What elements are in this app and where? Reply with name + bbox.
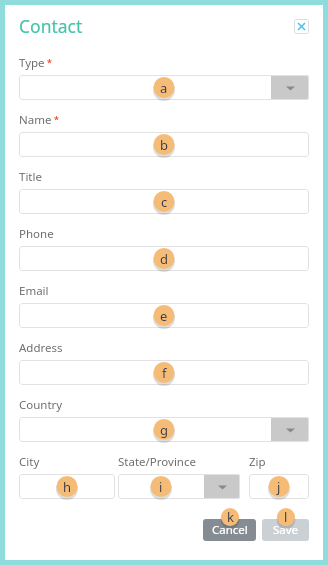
staticText: *	[54, 113, 59, 125]
button[interactable]	[19, 303, 309, 328]
button[interactable]	[19, 360, 309, 385]
button[interactable]: Close	[294, 19, 309, 34]
staticText: Email	[19, 283, 49, 299]
button[interactable]	[19, 132, 309, 157]
staticText: j	[277, 478, 281, 496]
staticText: k	[227, 508, 234, 526]
staticText: f	[162, 364, 167, 382]
staticText: State/Province	[118, 454, 196, 470]
staticText: City	[19, 454, 40, 470]
button[interactable]: Save	[262, 519, 309, 541]
staticText: i	[159, 478, 163, 496]
staticText: Title	[19, 169, 42, 185]
staticText: c	[161, 193, 168, 211]
staticText: g	[160, 421, 168, 439]
staticText: b	[160, 136, 168, 154]
button[interactable]: State or Province	[118, 474, 240, 499]
button[interactable]	[19, 474, 115, 499]
staticText: a	[160, 79, 168, 97]
staticText: Save	[273, 522, 299, 538]
staticText: Zip	[249, 454, 266, 470]
button[interactable]	[249, 474, 309, 499]
staticText: e	[160, 307, 168, 325]
staticText: Contact	[19, 14, 83, 38]
staticText: Name	[19, 112, 52, 128]
staticText: Country	[19, 397, 63, 413]
button[interactable]: Type	[19, 75, 309, 100]
staticText: d	[160, 250, 168, 268]
staticText: Cancel	[212, 522, 248, 538]
button[interactable]	[19, 189, 309, 214]
staticText: *	[47, 56, 52, 68]
staticText: h	[63, 478, 72, 496]
button[interactable]	[19, 246, 309, 271]
button[interactable]: Cancel	[203, 519, 256, 541]
button[interactable]: Country	[19, 417, 309, 442]
staticText: Address	[19, 340, 63, 356]
staticText: Phone	[19, 226, 54, 242]
staticText: l	[284, 508, 288, 526]
staticText: Type	[19, 55, 45, 71]
